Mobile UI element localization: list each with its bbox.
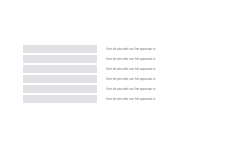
staticText: Voer de pincode van het apparaat in [28,52,232,66]
staticText: Voer de pincode van het apparaat in [28,42,232,56]
staticText: Voer de pincode van het apparaat in [28,62,232,76]
staticText: Voer de pincode van het apparaat in [28,72,232,86]
staticText: Voer de pincode van het apparaat in [28,92,232,106]
staticText: Voer de pincode van het apparaat in [28,82,232,96]
